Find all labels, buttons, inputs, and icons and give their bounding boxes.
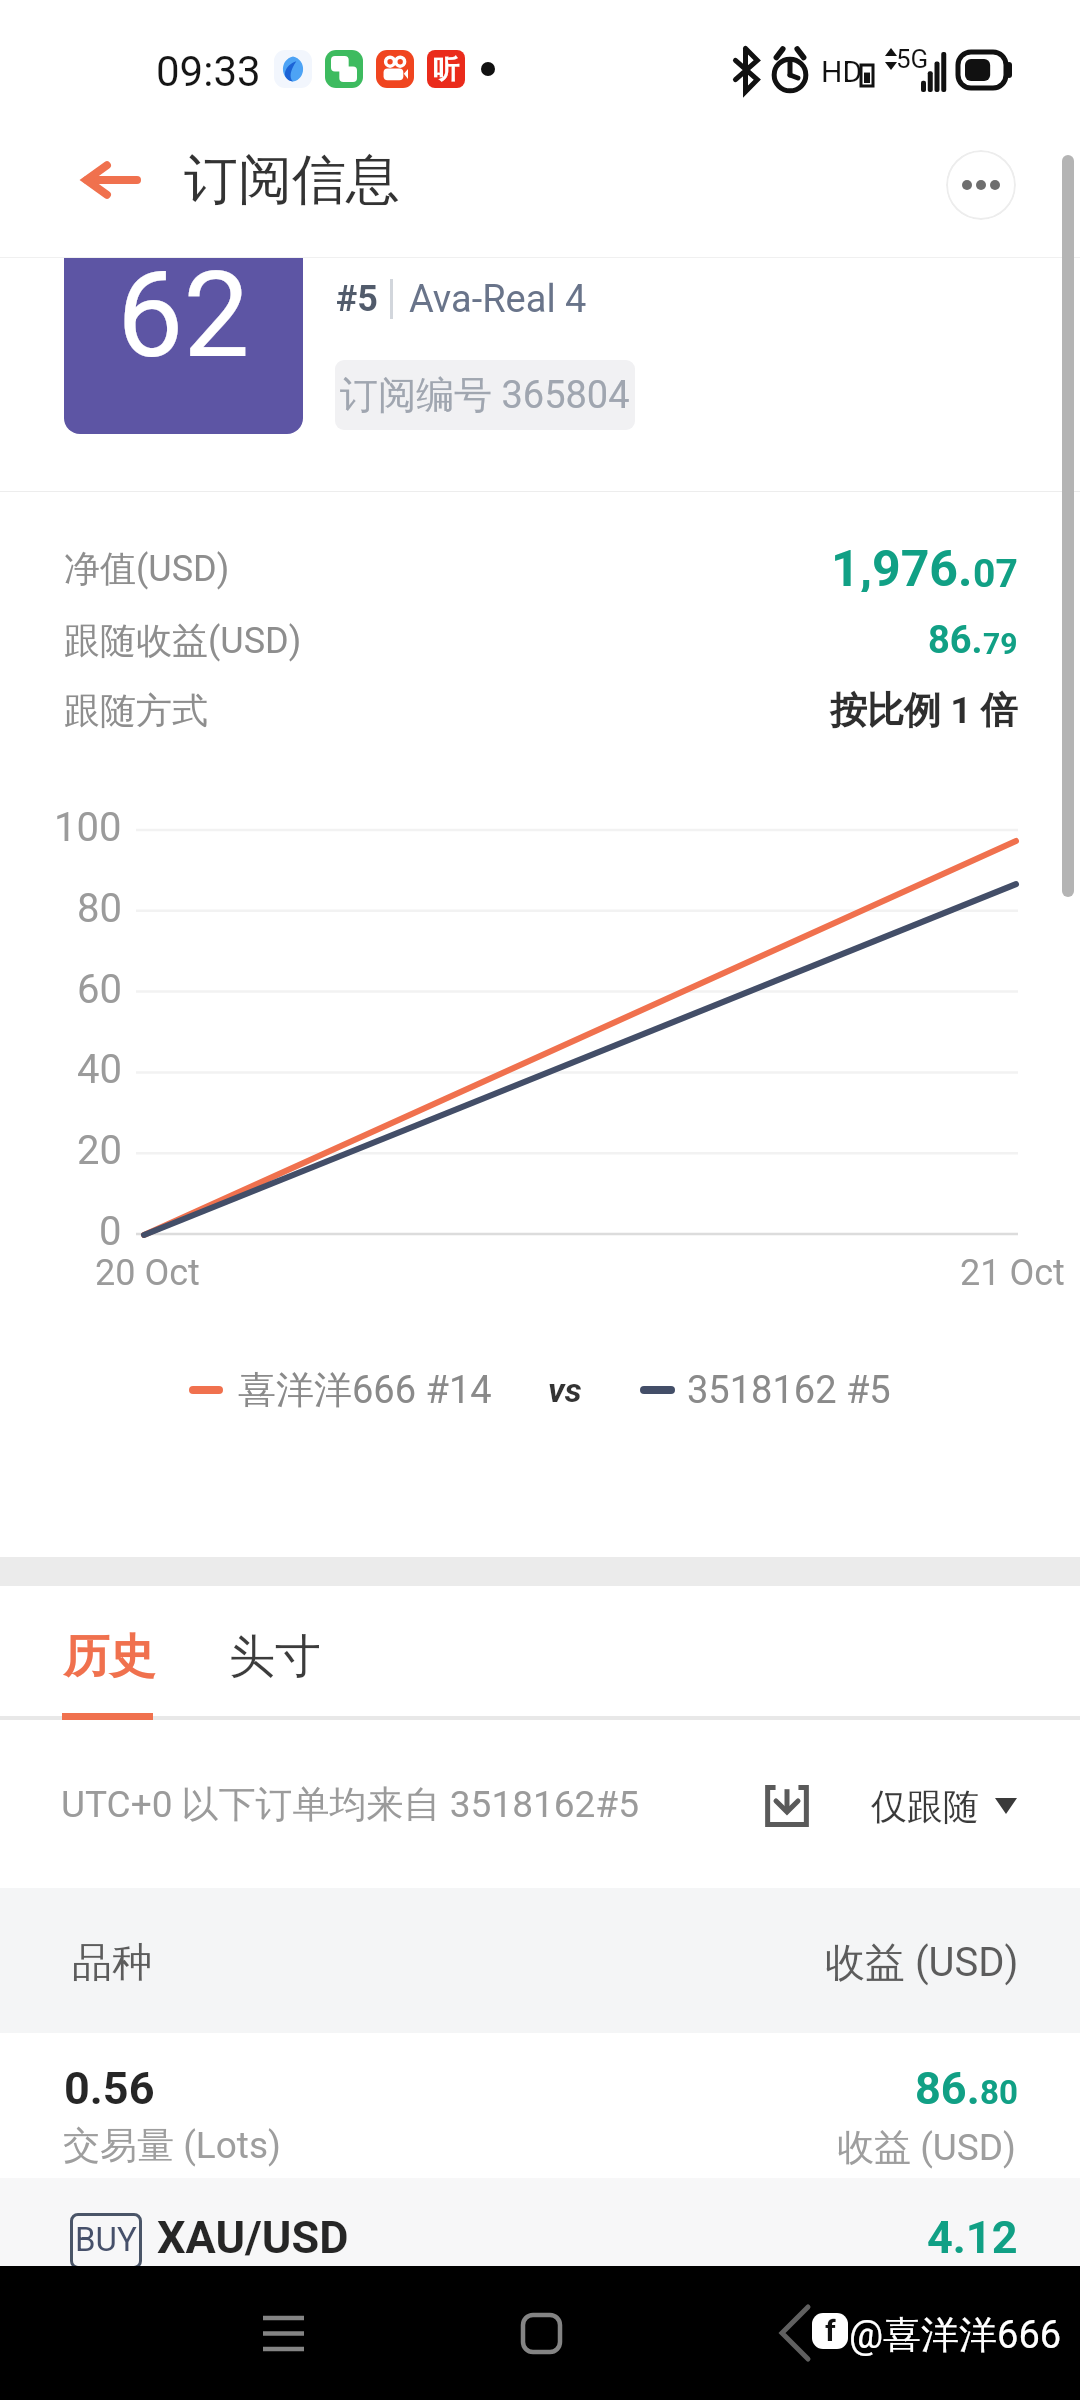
staticText: BUY bbox=[75, 2220, 137, 2259]
staticText: 21 Oct bbox=[960, 1252, 1065, 1294]
staticText: 40 bbox=[77, 1046, 122, 1093]
staticText: #5 bbox=[336, 278, 378, 320]
staticText: 79 bbox=[983, 626, 1018, 661]
button[interactable]: Home bbox=[481, 2266, 601, 2400]
button[interactable]: Back bbox=[64, 137, 158, 231]
staticText: 0.56 bbox=[64, 2062, 155, 2114]
staticText: 品种 bbox=[72, 1937, 152, 1987]
staticText: 4.12 bbox=[927, 2211, 1018, 2261]
staticText: 交易量 (Lots) bbox=[63, 2122, 281, 2169]
staticText: UTC+0 以下订单均来自 3518162#5 bbox=[61, 1781, 639, 1828]
staticText: 60 bbox=[77, 966, 122, 1013]
staticText: XAU/USD bbox=[157, 2211, 349, 2261]
staticText: 86. bbox=[915, 2062, 980, 2114]
staticText: 收益 (USD) bbox=[837, 2124, 1016, 2171]
staticText: 听 bbox=[433, 53, 459, 86]
button[interactable]: Back bbox=[772, 2303, 818, 2363]
staticText: 5G bbox=[896, 44, 929, 74]
staticText: 0 bbox=[99, 1208, 122, 1255]
button[interactable]: 0.56 bbox=[0, 2033, 1080, 2178]
staticText: 20 Oct bbox=[95, 1252, 200, 1294]
staticText: 20 bbox=[77, 1127, 122, 1174]
staticText: Ava-Real 4 bbox=[409, 277, 587, 322]
button[interactable]: 历史 bbox=[46, 1586, 170, 1722]
staticText: 80 bbox=[980, 2073, 1018, 2112]
button[interactable]: 仅跟随 bbox=[871, 1778, 1017, 1834]
staticText: 100 bbox=[54, 804, 122, 851]
staticText: 订阅信息 bbox=[184, 146, 400, 214]
staticText: f bbox=[825, 2313, 836, 2348]
staticText: 09:33 bbox=[156, 47, 261, 96]
staticText: 喜洋洋666 #14 bbox=[238, 1366, 492, 1414]
staticText: 仅跟随 bbox=[871, 1784, 979, 1829]
staticText: 头寸 bbox=[229, 1628, 321, 1686]
staticText: 07 bbox=[973, 551, 1018, 597]
staticText: 1,976. bbox=[831, 540, 973, 592]
staticText: 订阅编号 365804 bbox=[340, 371, 630, 419]
staticText: 历史 bbox=[63, 1628, 155, 1686]
staticText: 跟随方式 bbox=[64, 688, 208, 733]
staticText: @喜洋洋666 bbox=[849, 2311, 1062, 2359]
staticText: HD bbox=[821, 54, 863, 89]
staticText: 80 bbox=[77, 885, 122, 932]
staticText: 跟随收益(USD) bbox=[64, 618, 302, 663]
staticText: vs bbox=[548, 1370, 582, 1410]
button[interactable]: 头寸 bbox=[212, 1586, 336, 1722]
button[interactable]: More options bbox=[946, 150, 1016, 220]
staticText: 62 bbox=[117, 258, 250, 385]
button[interactable]: Recent apps bbox=[223, 2266, 343, 2400]
staticText: 3518162 #5 bbox=[687, 1368, 891, 1413]
staticText: 收益 (USD) bbox=[825, 1937, 1019, 1987]
button[interactable]: Download bbox=[755, 1772, 819, 1840]
staticText: 86. bbox=[928, 618, 983, 663]
staticText: 按比例 1 倍 bbox=[830, 687, 1018, 734]
staticText: 净值(USD) bbox=[64, 546, 230, 591]
